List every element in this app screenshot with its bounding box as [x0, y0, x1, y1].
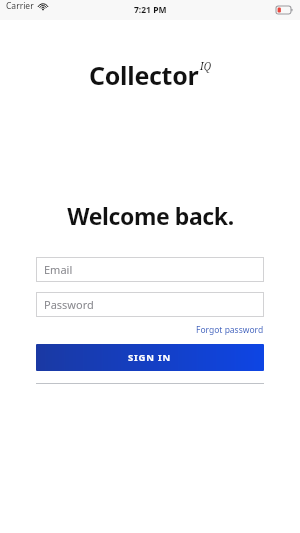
- staticText: Email: [44, 262, 73, 277]
- staticText: Carrier: [6, 0, 34, 12]
- staticText: Password: [44, 297, 94, 312]
- button[interactable]: Forgot password: [196, 323, 264, 337]
- staticText: SIGN IN: [128, 351, 172, 364]
- button[interactable]: Email: [36, 257, 264, 282]
- staticText: Forgot password: [196, 324, 264, 336]
- staticText: Collector: [89, 58, 199, 92]
- button[interactable]: SIGN IN: [36, 344, 264, 371]
- button[interactable]: Password: [36, 292, 264, 317]
- staticText: IQ: [200, 59, 212, 73]
- staticText: Welcome back.: [67, 200, 234, 231]
- staticText: 7:21 PM: [134, 4, 167, 16]
